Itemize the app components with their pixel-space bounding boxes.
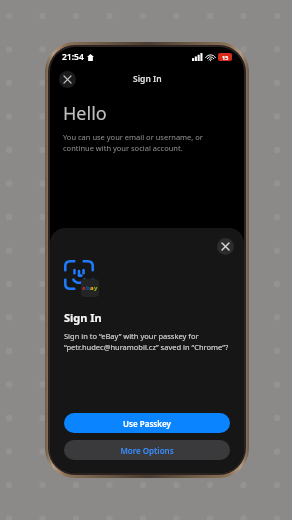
button[interactable]: More Options [64,440,230,460]
staticText: b [86,284,90,292]
staticText: Hello [63,101,107,126]
staticText: y [94,284,98,292]
staticText: Sign in to “eBay” with your passkey for … [64,331,230,352]
staticText: Sign In [64,310,102,325]
staticText: e [82,284,86,292]
staticText: You can use your email or username, or c… [63,132,231,153]
button[interactable]: Use Passkey [64,413,230,433]
button[interactable]: Close [217,238,234,255]
staticText: More Options [120,445,174,456]
staticText: 21:54 [62,51,84,63]
staticText: a [90,284,94,292]
staticText: Use Passkey [123,418,171,429]
staticText: Sign In [133,73,162,85]
button[interactable]: Close [59,71,76,88]
staticText: 15 [222,54,229,61]
